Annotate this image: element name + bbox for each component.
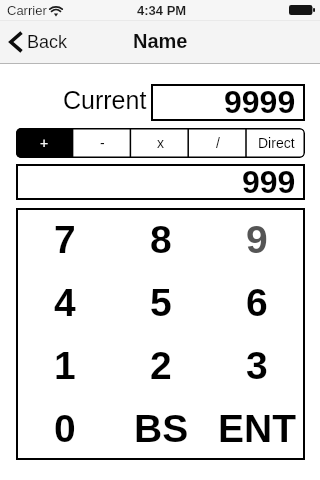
button[interactable]: 1 (16, 334, 113, 397)
staticText: x (157, 135, 164, 151)
button[interactable]: 4 (16, 271, 113, 334)
staticText: Back (27, 32, 68, 52)
button[interactable]: x (131, 128, 189, 158)
button[interactable]: 999 (16, 164, 305, 200)
button[interactable]: 5 (113, 271, 209, 334)
staticText: 7 (54, 218, 76, 262)
staticText: 4 (54, 281, 76, 325)
staticText: 4:34 PM (137, 3, 187, 18)
button[interactable]: 8 (113, 208, 209, 271)
staticText: Current (63, 86, 147, 114)
staticText: 9 (246, 218, 268, 262)
other: Battery full (289, 5, 315, 15)
button[interactable]: / (189, 128, 247, 158)
staticText: BS (134, 407, 189, 451)
button[interactable]: 9 (209, 208, 305, 271)
button[interactable]: BS (113, 397, 209, 460)
staticText: Carrier (7, 3, 47, 18)
button[interactable]: ENT (209, 397, 305, 460)
staticText: 3 (246, 344, 268, 388)
button[interactable]: 9999 (151, 84, 305, 121)
staticText: 8 (150, 218, 172, 262)
staticText: 6 (246, 281, 268, 325)
staticText: + (40, 135, 49, 151)
button[interactable]: 3 (209, 334, 305, 397)
staticText: - (100, 135, 105, 151)
staticText: Name (133, 30, 188, 52)
staticText: 999 (242, 164, 296, 199)
staticText: 5 (150, 281, 172, 325)
button[interactable]: 0 (16, 397, 113, 460)
button[interactable]: Back (0, 20, 76, 64)
staticText: ENT (218, 407, 296, 451)
button[interactable]: Direct (247, 128, 305, 158)
staticText: 9999 (224, 84, 296, 120)
button[interactable]: - (73, 128, 131, 158)
button[interactable]: + (16, 128, 73, 158)
other: Wi-Fi signal (50, 6, 62, 16)
button[interactable]: 2 (113, 334, 209, 397)
button[interactable]: 7 (16, 208, 113, 271)
button[interactable]: 6 (209, 271, 305, 334)
staticText: 2 (150, 344, 172, 388)
staticText: Direct (258, 135, 295, 151)
staticText: / (216, 135, 220, 151)
staticText: 0 (54, 407, 76, 451)
staticText: 1 (54, 344, 76, 388)
